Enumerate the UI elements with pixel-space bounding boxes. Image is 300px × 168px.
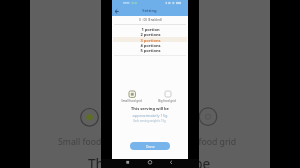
staticText: Big food grid xyxy=(158,99,176,103)
button[interactable]: Back xyxy=(113,8,120,15)
staticText: This serving will be xyxy=(88,155,211,168)
staticText: Small food grid xyxy=(58,136,121,148)
staticText: 5 portions xyxy=(140,48,161,53)
button[interactable]: Big food grid xyxy=(164,90,173,99)
staticText: 3 portions xyxy=(140,38,161,43)
staticText: 4 portions xyxy=(140,43,161,48)
staticText: This serving will be xyxy=(131,106,169,111)
staticText: Small food grid xyxy=(121,99,142,103)
button[interactable]: Done xyxy=(130,142,170,150)
button[interactable]: Small food grid xyxy=(128,90,137,99)
staticText: Each serving weight is 15g xyxy=(133,119,166,123)
staticText: Setting xyxy=(142,8,157,14)
staticText: 1 portion xyxy=(141,27,160,32)
staticText: Big food grid xyxy=(183,136,237,148)
staticText: 0 : 00 (Enabled) xyxy=(139,18,162,22)
staticText: 2 portions xyxy=(140,32,161,37)
staticText: approximately 15g xyxy=(132,113,168,118)
staticText: Done xyxy=(146,144,155,149)
